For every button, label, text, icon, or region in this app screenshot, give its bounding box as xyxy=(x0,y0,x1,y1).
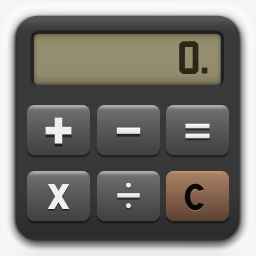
button[interactable]: Plus xyxy=(27,105,90,155)
button[interactable]: Minus xyxy=(97,105,160,155)
button[interactable]: Equals xyxy=(166,105,229,155)
button[interactable]: Multiply xyxy=(27,171,90,221)
button[interactable]: Divide xyxy=(97,171,160,221)
button[interactable]: Clear xyxy=(166,171,229,221)
